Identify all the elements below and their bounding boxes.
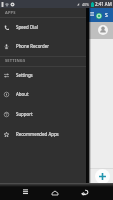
button[interactable]: Recommended Apps [0,124,86,144]
button[interactable]: New conversation [95,169,110,184]
staticText: Phone Recorder [16,43,50,49]
button[interactable]: Phone Recorder [0,36,86,56]
button[interactable]: Speed Dial [0,17,86,37]
button[interactable]: About [0,84,86,104]
staticText: Settings [16,72,33,78]
button[interactable]: Open navigation drawer [90,12,94,16]
button[interactable]: Support [0,104,86,124]
button[interactable]: Recent apps [19,183,31,200]
staticText: Speed Dial [16,24,38,30]
staticText: 2:41 AM [95,1,112,7]
staticText: Recommended Apps [16,131,59,137]
button[interactable]: Back [78,183,90,200]
staticText: 40% [82,2,90,7]
staticText: APPS [5,10,16,15]
staticText: SETTINGS [5,58,26,63]
staticText: About [16,91,29,97]
staticText: Support [16,111,33,117]
button[interactable]: Home [49,183,61,200]
staticText: S [105,12,108,19]
button[interactable]: Settings [0,65,86,85]
